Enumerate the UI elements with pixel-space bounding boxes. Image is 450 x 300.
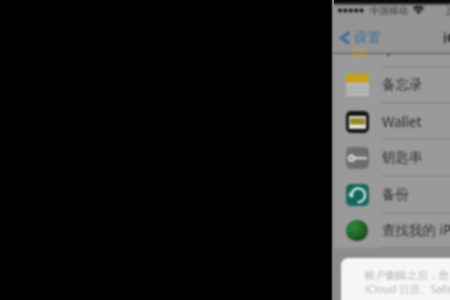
staticText: 设置 (354, 29, 381, 46)
other: Wi-Fi (413, 6, 424, 14)
button[interactable]: Wallet (333, 103, 450, 140)
other: Signal strength (338, 8, 366, 13)
staticText: 备忘录 (382, 76, 423, 93)
staticText: iCloud 日历、Safa (365, 282, 450, 296)
button[interactable]: 备忘录 (333, 66, 450, 103)
staticText: 钥匙串 (382, 149, 423, 166)
staticText: 查找我的 iPhone (382, 221, 450, 239)
staticText: 上午 (444, 5, 450, 17)
staticText: 帐户删除之后，您 (365, 269, 449, 282)
staticText: 备份 (382, 186, 409, 203)
button[interactable]: 查找我的 iPhone (333, 212, 450, 248)
button[interactable]: 备份 (333, 176, 450, 213)
staticText: iCloud (443, 28, 450, 47)
button[interactable]: 设置 (340, 29, 381, 46)
staticText: Wallet (382, 113, 422, 131)
staticText: 中国移动 (370, 5, 408, 17)
button[interactable]: 钥匙串 (333, 139, 450, 176)
